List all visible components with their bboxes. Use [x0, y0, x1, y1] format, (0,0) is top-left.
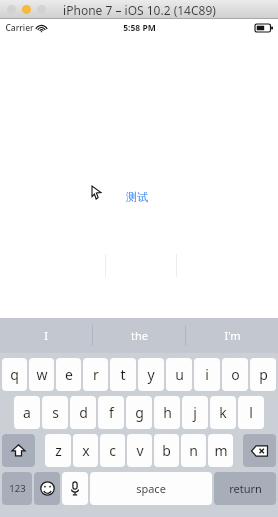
button[interactable]: d: [70, 396, 96, 429]
button[interactable]: b: [154, 434, 179, 467]
staticText: q: [10, 365, 19, 384]
staticText: y: [147, 365, 155, 384]
staticText: I'm: [224, 328, 241, 343]
staticText: d: [79, 403, 88, 422]
staticText: t: [120, 365, 126, 384]
staticText: z: [55, 441, 62, 460]
button[interactable]: s: [42, 396, 68, 429]
button[interactable]: u: [166, 358, 192, 391]
button[interactable]: Zoom: [37, 5, 46, 14]
button[interactable]: y: [138, 358, 164, 391]
staticText: Carrier: [5, 22, 34, 34]
button[interactable]: Emoji: [34, 472, 60, 505]
button[interactable]: Backspace: [243, 434, 276, 467]
staticText: g: [135, 403, 144, 422]
staticText: iPhone 7 – iOS 10.2 (14C89): [63, 2, 216, 18]
staticText: h: [163, 403, 172, 422]
button[interactable]: z: [45, 434, 71, 467]
button[interactable]: 测试: [122, 188, 152, 206]
button[interactable]: return: [214, 472, 276, 505]
staticText: x: [82, 441, 90, 460]
button[interactable]: g: [126, 396, 152, 429]
staticText: o: [231, 365, 240, 384]
button[interactable]: l: [238, 396, 264, 429]
button[interactable]: m: [208, 434, 233, 467]
button[interactable]: q: [2, 358, 27, 391]
button[interactable]: Shift: [2, 434, 35, 467]
button[interactable]: f: [98, 396, 124, 429]
staticText: i: [205, 365, 209, 384]
staticText: r: [93, 365, 99, 384]
button[interactable]: Close: [7, 5, 16, 14]
staticText: a: [23, 403, 31, 422]
staticText: e: [65, 365, 73, 384]
staticText: return: [229, 481, 262, 496]
staticText: m: [214, 441, 228, 460]
button[interactable]: x: [73, 434, 98, 467]
button[interactable]: space: [90, 472, 212, 505]
staticText: I: [44, 328, 48, 343]
button[interactable]: r: [83, 358, 108, 391]
button[interactable]: w: [29, 358, 54, 391]
button[interactable]: e: [56, 358, 81, 391]
staticText: b: [162, 441, 171, 460]
staticText: space: [136, 481, 166, 496]
staticText: k: [219, 403, 227, 422]
staticText: f: [109, 403, 114, 422]
staticText: s: [52, 403, 59, 422]
staticText: the: [131, 328, 148, 343]
staticText: p: [259, 365, 268, 384]
button[interactable]: j: [182, 396, 208, 429]
button[interactable]: I: [0, 318, 92, 353]
other: Battery: [255, 24, 273, 32]
staticText: n: [189, 441, 198, 460]
staticText: l: [249, 403, 253, 422]
button[interactable]: p: [250, 358, 276, 391]
staticText: c: [109, 441, 116, 460]
button[interactable]: a: [14, 396, 40, 429]
button[interactable]: n: [181, 434, 206, 467]
staticText: w: [36, 365, 48, 384]
staticText: 123: [9, 482, 26, 495]
staticText: j: [193, 403, 197, 422]
button[interactable]: t: [110, 358, 136, 391]
button[interactable]: o: [222, 358, 248, 391]
staticText: 测试: [126, 190, 148, 204]
staticText: 5:58 PM: [123, 22, 156, 34]
button[interactable]: I'm: [186, 318, 278, 353]
staticText: v: [136, 441, 144, 460]
button[interactable]: h: [154, 396, 180, 429]
button[interactable]: i: [194, 358, 220, 391]
button[interactable]: v: [127, 434, 152, 467]
button[interactable]: Dictation: [62, 472, 88, 505]
button[interactable]: Minimize: [22, 5, 31, 14]
button[interactable]: the: [93, 318, 185, 353]
staticText: u: [175, 365, 184, 384]
button[interactable]: 123: [2, 472, 32, 505]
button[interactable]: c: [100, 434, 125, 467]
button[interactable]: k: [210, 396, 236, 429]
